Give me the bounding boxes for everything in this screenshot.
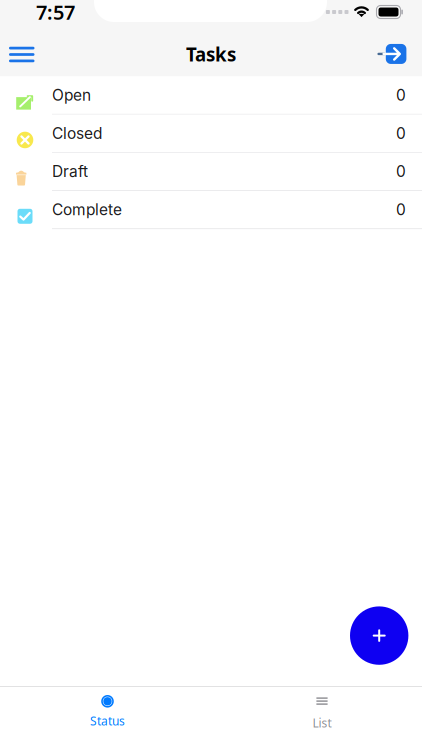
button[interactable]: Menu [0, 32, 43, 76]
staticText: 0 [396, 162, 406, 181]
staticText: 0 [396, 86, 406, 104]
staticText: List [312, 715, 331, 731]
staticText: Status [90, 713, 125, 729]
staticText: 7:57 [36, 0, 75, 25]
button[interactable]: Open [0, 76, 422, 115]
staticText: Tasks [186, 42, 236, 67]
staticText: Open [52, 86, 91, 104]
button[interactable]: Sign in [370, 32, 422, 76]
button[interactable]: List [272, 687, 372, 750]
button[interactable]: Status [57, 687, 157, 750]
button[interactable]: Draft [0, 153, 422, 191]
staticText: 0 [396, 200, 406, 219]
staticText: Complete [52, 200, 122, 219]
staticText: Closed [52, 124, 102, 143]
button[interactable]: Add task [350, 606, 408, 665]
button[interactable]: Complete [0, 191, 422, 229]
button[interactable]: Closed [0, 115, 422, 153]
staticText: 0 [396, 124, 406, 143]
staticText: Draft [52, 162, 88, 181]
